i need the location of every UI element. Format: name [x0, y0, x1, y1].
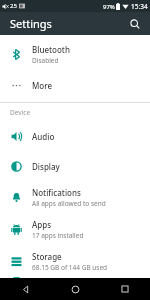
button[interactable]: Home [50, 278, 100, 300]
staticText: All apps allowed to send [32, 199, 106, 208]
button[interactable]: Search [125, 14, 145, 34]
button[interactable]: Bluetooth [0, 38, 150, 70]
button[interactable]: Display [0, 151, 150, 181]
staticText: Notifications [32, 187, 81, 198]
staticText: Settings [10, 16, 52, 31]
staticText: Storage [32, 251, 62, 262]
staticText: Disabled [32, 56, 59, 65]
button[interactable]: Storage [0, 245, 150, 277]
button[interactable]: More [0, 70, 150, 100]
staticText: 15:34 [131, 2, 148, 11]
button[interactable]: Battery [0, 277, 150, 278]
staticText: Audio [32, 131, 55, 142]
staticText: Device [10, 108, 31, 117]
button[interactable]: Notifications [0, 181, 150, 213]
staticText: 25 [10, 2, 17, 10]
staticText: 17 apps installed [32, 231, 84, 240]
staticText: Apps [32, 219, 52, 230]
button[interactable]: Recent apps [100, 278, 150, 300]
staticText: 68.15 GB of 144 GB used [32, 263, 108, 272]
staticText: Bluetooth [32, 44, 70, 55]
button[interactable]: Audio [0, 121, 150, 151]
button[interactable]: Back [0, 278, 50, 300]
button[interactable]: Apps [0, 213, 150, 245]
staticText: 97% [103, 3, 115, 11]
staticText: Display [32, 161, 60, 172]
staticText: More [32, 80, 53, 91]
